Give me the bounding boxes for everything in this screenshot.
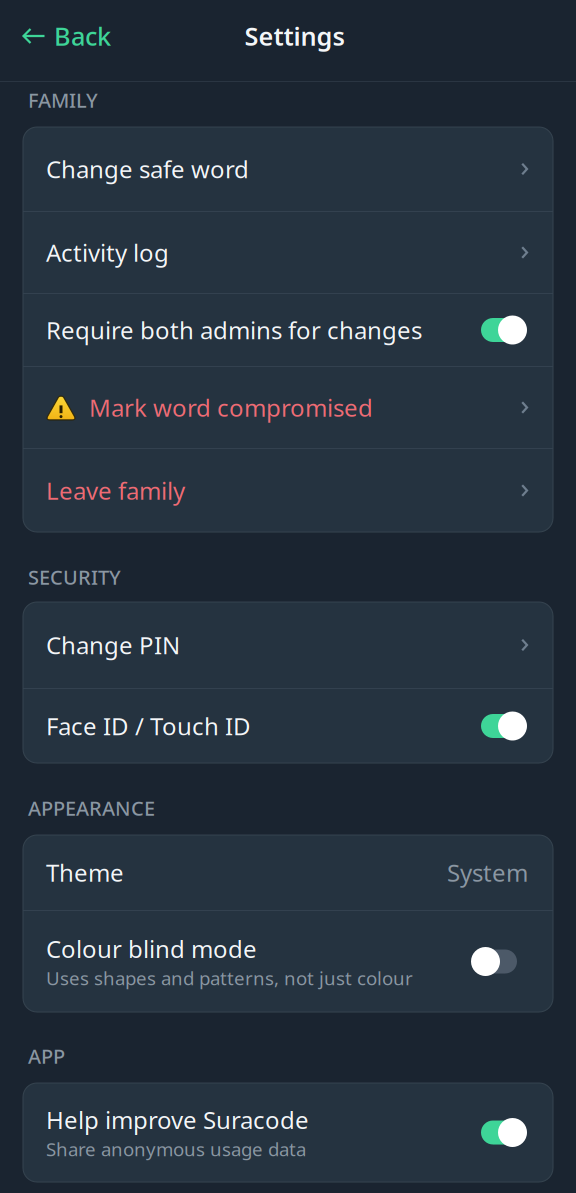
button[interactable]: Theme bbox=[23, 835, 553, 910]
button[interactable]: Change PIN bbox=[23, 602, 553, 688]
staticText: Face ID / Touch ID bbox=[46, 710, 251, 742]
button[interactable]: Require both admins for changes bbox=[23, 294, 553, 366]
staticText: Settings bbox=[244, 19, 344, 53]
button[interactable]: Activity log bbox=[23, 212, 553, 293]
button[interactable]: Help improve Suracode bbox=[23, 1083, 553, 1182]
staticText: APPEARANCE bbox=[28, 795, 155, 821]
staticText: Colour blind mode bbox=[46, 933, 257, 965]
staticText: Help improve Suracode bbox=[46, 1104, 309, 1136]
staticText: APP bbox=[28, 1043, 65, 1069]
staticText: Activity log bbox=[46, 237, 169, 268]
staticText: Leave family bbox=[46, 475, 185, 506]
staticText: Share anonymous usage data bbox=[46, 1136, 306, 1161]
staticText: Theme bbox=[46, 857, 124, 888]
staticText: Change PIN bbox=[46, 629, 180, 661]
staticText: Mark word compromised bbox=[89, 392, 373, 423]
staticText: FAMILY bbox=[28, 87, 98, 113]
staticText: SECURITY bbox=[28, 564, 121, 590]
staticText: Uses shapes and patterns, not just colou… bbox=[46, 965, 413, 990]
button[interactable]: Change safe word bbox=[23, 127, 553, 211]
button[interactable]: Face ID / Touch ID bbox=[23, 689, 553, 763]
staticText: Change safe word bbox=[46, 153, 249, 185]
staticText: Require both admins for changes bbox=[46, 314, 422, 346]
button[interactable]: Back bbox=[0, 0, 133, 72]
button[interactable]: Colour blind mode bbox=[23, 911, 553, 1012]
button[interactable]: Leave family bbox=[23, 449, 553, 532]
staticText: System bbox=[447, 857, 528, 888]
staticText: Back bbox=[54, 19, 111, 53]
button[interactable]: Mark word compromised bbox=[23, 367, 553, 448]
